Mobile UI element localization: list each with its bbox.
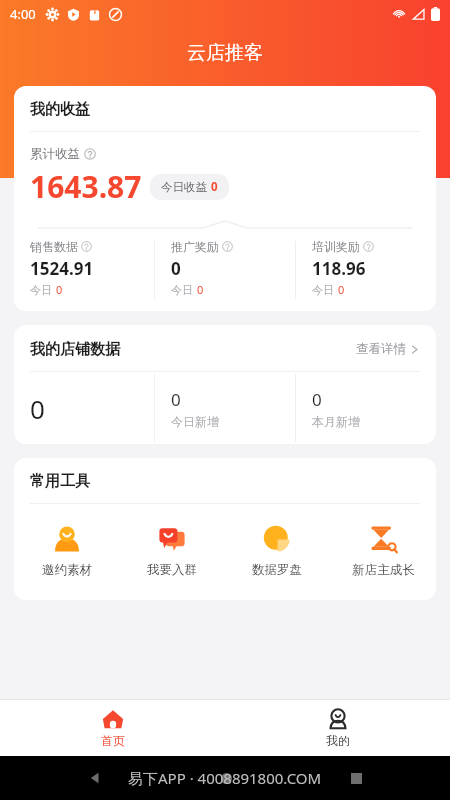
button[interactable]: 新店主成长 — [330, 522, 436, 580]
staticText: 累计收益 — [30, 146, 80, 162]
button[interactable]: 数据罗盘 — [224, 522, 330, 580]
staticText: 我的收益 — [30, 100, 90, 119]
staticText: 今日新增 — [171, 414, 219, 429]
staticText: 1524.91 — [30, 257, 94, 280]
other: Back — [88, 771, 102, 785]
staticText: 4:00 — [10, 5, 36, 23]
other: Home — [221, 773, 232, 784]
staticText: 销售数据 — [30, 239, 78, 254]
staticText: 0 — [338, 282, 345, 297]
button[interactable]: 销售数据 — [14, 239, 154, 301]
staticText: 今日 — [312, 283, 334, 297]
staticText: 0 — [312, 388, 322, 411]
staticText: 本月新增 — [312, 414, 360, 429]
staticText: 0 — [30, 391, 45, 426]
staticText: 我的 — [326, 733, 350, 748]
staticText: 首页 — [101, 733, 125, 748]
button[interactable]: 0 — [14, 372, 154, 444]
staticText: 118.96 — [312, 257, 366, 280]
button[interactable]: 今日收益 — [150, 174, 229, 200]
button[interactable]: 我要入群 — [119, 522, 224, 580]
staticText: 0 — [56, 282, 63, 297]
button[interactable]: 培训奖励 — [296, 239, 436, 301]
staticText: 0 — [171, 388, 181, 411]
staticText: 0 — [171, 257, 181, 280]
staticText: 数据罗盘 — [252, 562, 302, 578]
staticText: 0 — [197, 282, 204, 297]
button[interactable]: 邀约素材 — [14, 522, 119, 580]
staticText: 我要入群 — [147, 562, 197, 578]
staticText: 新店主成长 — [352, 562, 415, 578]
staticText: 邀约素材 — [42, 562, 92, 578]
button[interactable]: 推广奖励 — [155, 239, 295, 301]
staticText: 查看详情 — [356, 341, 406, 357]
staticText: 今日收益 — [161, 180, 207, 194]
staticText: 今日 — [30, 283, 52, 297]
staticText: 培训奖励 — [312, 239, 360, 254]
button[interactable]: 首页 — [0, 700, 225, 756]
button[interactable]: 0 — [155, 372, 295, 444]
button[interactable]: 我的 — [225, 700, 450, 756]
staticText: 0 — [211, 179, 218, 195]
button[interactable]: 查看详情 — [354, 339, 422, 359]
staticText: 易下APP · 4008891800.COM — [128, 768, 322, 788]
staticText: 我的店铺数据 — [30, 340, 120, 359]
staticText: 1643.87 — [30, 166, 142, 207]
button[interactable]: 0 — [296, 372, 436, 444]
staticText: 云店推客 — [187, 41, 263, 65]
staticText: 今日 — [171, 283, 193, 297]
staticText: 推广奖励 — [171, 239, 219, 254]
staticText: 常用工具 — [30, 472, 90, 491]
